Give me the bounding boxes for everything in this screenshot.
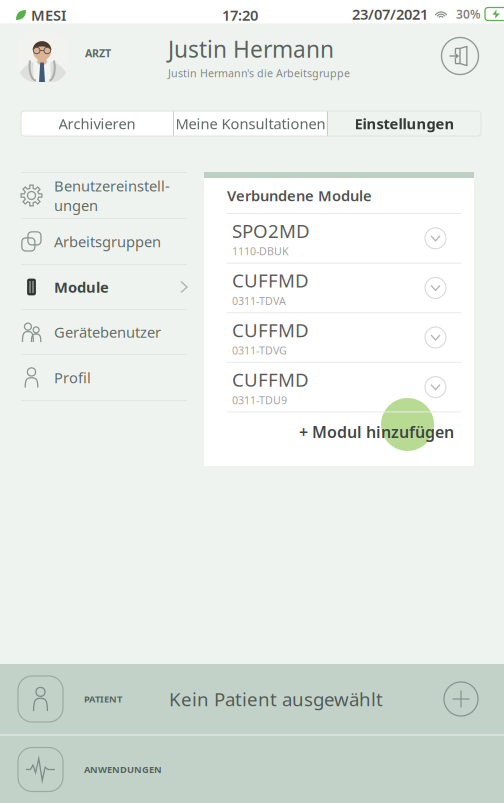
button[interactable]: SPO2MD: [204, 214, 474, 263]
staticText: Meine Konsultationen: [175, 114, 325, 133]
staticText: Arbeitsgruppen: [54, 232, 161, 251]
button[interactable]: Module: [0, 265, 204, 309]
button[interactable]: Abmelden: [438, 34, 482, 78]
staticText: 0311-TDU9: [232, 393, 287, 407]
button[interactable]: + Modul hinzufügen: [204, 412, 474, 451]
staticText: CUFFMD: [232, 367, 309, 392]
staticText: Kein Patient ausgewählt: [169, 687, 383, 711]
staticText: 0311-TDVG: [232, 343, 287, 357]
staticText: 30%: [456, 6, 481, 22]
button[interactable]: CUFFMD: [204, 363, 474, 411]
staticText: Archivieren: [58, 114, 135, 133]
staticText: Justin Hermann's die Arbeitsgruppe: [168, 66, 350, 80]
staticText: Profil: [54, 368, 91, 387]
button[interactable]: Archivieren: [21, 111, 173, 136]
staticText: Einstellungen: [354, 114, 454, 133]
button[interactable]: CUFFMD: [204, 264, 474, 312]
button[interactable]: Arbeitsgruppen: [0, 219, 204, 264]
staticText: Justin Hermann: [168, 34, 334, 64]
staticText: 23/07/2021: [352, 4, 428, 24]
staticText: 0311-TDVA: [232, 294, 286, 308]
staticText: ANWENDUNGEN: [84, 763, 162, 776]
staticText: MESI: [31, 5, 66, 25]
staticText: CUFFMD: [232, 268, 309, 293]
staticText: PATIENT: [84, 693, 122, 705]
staticText: 17:20: [222, 5, 258, 25]
staticText: Module: [54, 277, 109, 297]
staticText: CUFFMD: [232, 317, 309, 342]
button[interactable]: Gerätebenutzer: [0, 310, 204, 354]
button[interactable]: ANWENDUNGEN: [0, 736, 504, 803]
button[interactable]: PATIENT: [0, 664, 504, 734]
staticText: + Modul hinzufügen: [299, 421, 454, 442]
button[interactable]: Benutzereinstellungen: [0, 173, 204, 218]
button[interactable]: Einstellungen: [328, 111, 481, 136]
button[interactable]: CUFFMD: [204, 313, 474, 362]
button[interactable]: Profil: [0, 355, 204, 400]
staticText: Verbundene Module: [227, 186, 372, 205]
staticText: Benutzereinstellungen: [54, 176, 170, 215]
staticText: 1110-DBUK: [232, 244, 289, 258]
button[interactable]: Meine Konsultationen: [174, 111, 327, 136]
staticText: SPO2MD: [232, 218, 310, 243]
staticText: Gerätebenutzer: [54, 322, 161, 342]
staticText: ARZT: [85, 46, 111, 60]
